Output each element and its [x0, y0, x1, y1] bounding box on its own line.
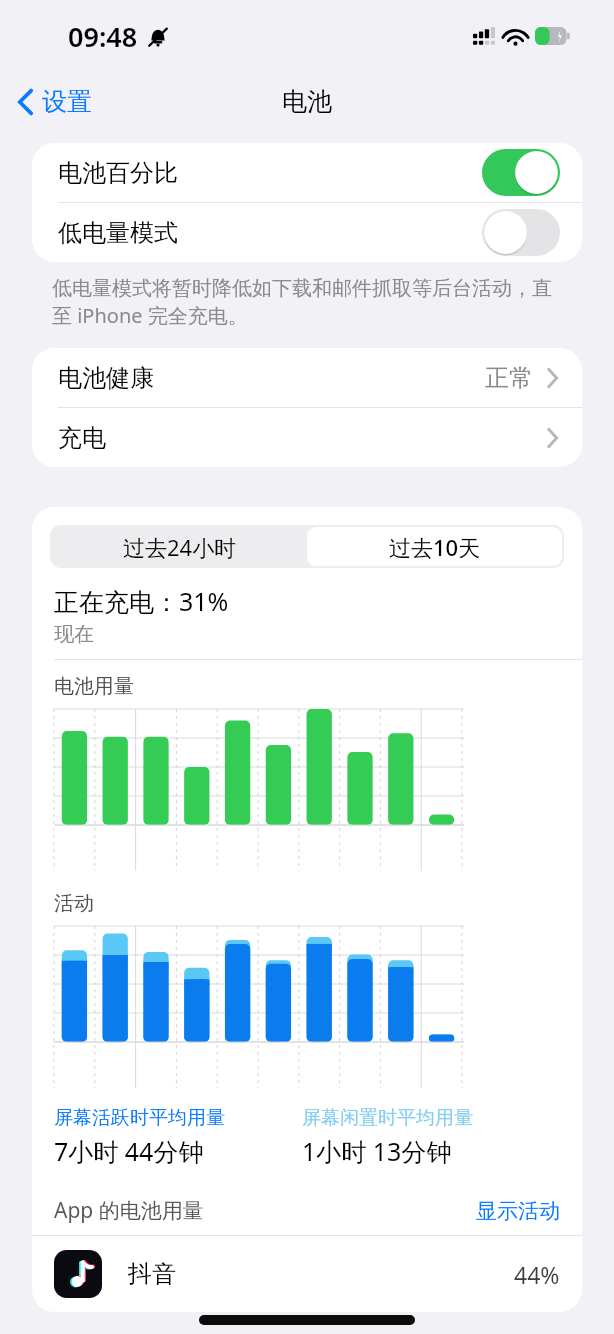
button[interactable]: 电池百分比 — [32, 143, 582, 202]
staticText: 电池 — [282, 86, 332, 117]
staticText: 屏幕活跃时平均用量 — [54, 1106, 225, 1130]
staticText: 过去10天 — [389, 532, 481, 562]
staticText: App 的电池用量 — [54, 1196, 204, 1225]
button[interactable]: 抖音 — [32, 1236, 582, 1312]
staticText: 充电 — [58, 423, 106, 453]
staticText: 低电量模式 — [58, 218, 178, 248]
button[interactable]: 低电量模式 — [32, 203, 582, 262]
staticText: 电池百分比 — [58, 158, 178, 188]
staticText: 44% — [514, 1259, 560, 1290]
staticText: 电池健康 — [58, 363, 154, 393]
button[interactable]: 过去24小时 — [52, 527, 307, 566]
staticText: 抖音 — [128, 1259, 176, 1289]
staticText: 活动 — [54, 891, 94, 916]
button[interactable]: 充电 — [32, 408, 582, 467]
staticText: 显示活动 — [476, 1198, 560, 1224]
staticText: 7小时 44分钟 — [54, 1134, 204, 1168]
button[interactable]: 设置 — [0, 80, 104, 123]
other: On — [482, 149, 560, 196]
staticText: 1小时 13分钟 — [302, 1134, 452, 1168]
staticText: 电池用量 — [54, 674, 134, 699]
staticText: 09:48 — [68, 18, 138, 55]
staticText: 设置 — [42, 86, 92, 117]
other: Off — [482, 209, 560, 256]
staticText: 正常 — [485, 363, 533, 393]
button[interactable]: 显示活动 — [476, 1198, 560, 1224]
staticText: 屏幕闲置时平均用量 — [302, 1106, 473, 1130]
staticText: 过去24小时 — [123, 532, 237, 562]
staticText: 现在 — [54, 622, 94, 647]
staticText: 低电量模式将暂时降低如下载和邮件抓取等后台活动，直至 iPhone 完全充电。 — [52, 276, 566, 329]
staticText: 正在充电：31% — [54, 584, 229, 618]
button[interactable]: 电池健康 — [32, 348, 582, 407]
button[interactable]: 过去10天 — [307, 527, 562, 566]
